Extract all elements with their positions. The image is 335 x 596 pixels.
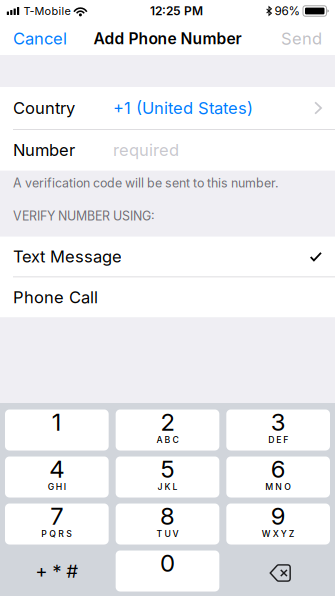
button[interactable]: 8 xyxy=(116,503,219,544)
staticText: T U V xyxy=(156,528,178,539)
button[interactable]: + * # xyxy=(5,550,109,591)
button[interactable]: 2 xyxy=(116,409,219,450)
staticText: D E F xyxy=(268,434,288,445)
button[interactable]: Text Message xyxy=(0,237,335,277)
staticText: Phone Call xyxy=(13,287,98,307)
staticText: 0 xyxy=(160,548,175,577)
staticText: Send xyxy=(281,28,322,48)
button[interactable]: 9 xyxy=(226,503,330,544)
staticText: + * # xyxy=(35,560,78,582)
staticText: A verification code will be sent to this… xyxy=(13,176,279,191)
staticText: Cancel xyxy=(13,28,67,48)
staticText: M N O xyxy=(265,481,291,492)
staticText: 1 xyxy=(52,407,62,436)
staticText: 96% xyxy=(274,4,300,18)
staticText: +1 (United States) xyxy=(113,98,253,118)
button[interactable]: 0 xyxy=(116,550,219,591)
button[interactable]: 1 xyxy=(5,409,109,450)
staticText: Number xyxy=(13,140,75,160)
staticText: Add Phone Number xyxy=(93,29,241,48)
button[interactable]: 5 xyxy=(116,456,219,497)
staticText: J K L xyxy=(157,481,177,492)
button[interactable]: 3 xyxy=(226,409,330,450)
button[interactable]: 6 xyxy=(226,456,330,497)
button[interactable]: 4 xyxy=(5,456,109,497)
button[interactable]: Phone Call xyxy=(0,277,335,317)
button[interactable]: Send xyxy=(268,22,335,55)
staticText: Text Message xyxy=(13,247,122,267)
staticText: 8 xyxy=(160,501,175,530)
staticText: Country xyxy=(13,98,75,118)
button[interactable]: Country xyxy=(0,87,335,129)
staticText: 12:25 PM xyxy=(150,4,203,18)
staticText: A B C xyxy=(156,434,178,445)
staticText: 3 xyxy=(271,407,286,436)
staticText: 9 xyxy=(271,501,286,530)
button[interactable]: Delete xyxy=(226,550,330,591)
staticText: 2 xyxy=(160,407,174,436)
staticText: G H I xyxy=(48,481,66,492)
staticText: 7 xyxy=(50,501,63,530)
button[interactable]: 7 xyxy=(5,503,109,544)
staticText: 6 xyxy=(271,454,286,483)
staticText: T-Mobile xyxy=(23,4,70,18)
button[interactable]: Cancel xyxy=(0,22,80,55)
staticText: VERIFY NUMBER USING: xyxy=(13,209,155,224)
staticText: W X Y Z xyxy=(262,528,295,539)
staticText: P Q R S xyxy=(41,528,72,539)
staticText: 4 xyxy=(49,454,64,483)
staticText: 5 xyxy=(160,454,174,483)
staticText: required xyxy=(113,140,179,160)
